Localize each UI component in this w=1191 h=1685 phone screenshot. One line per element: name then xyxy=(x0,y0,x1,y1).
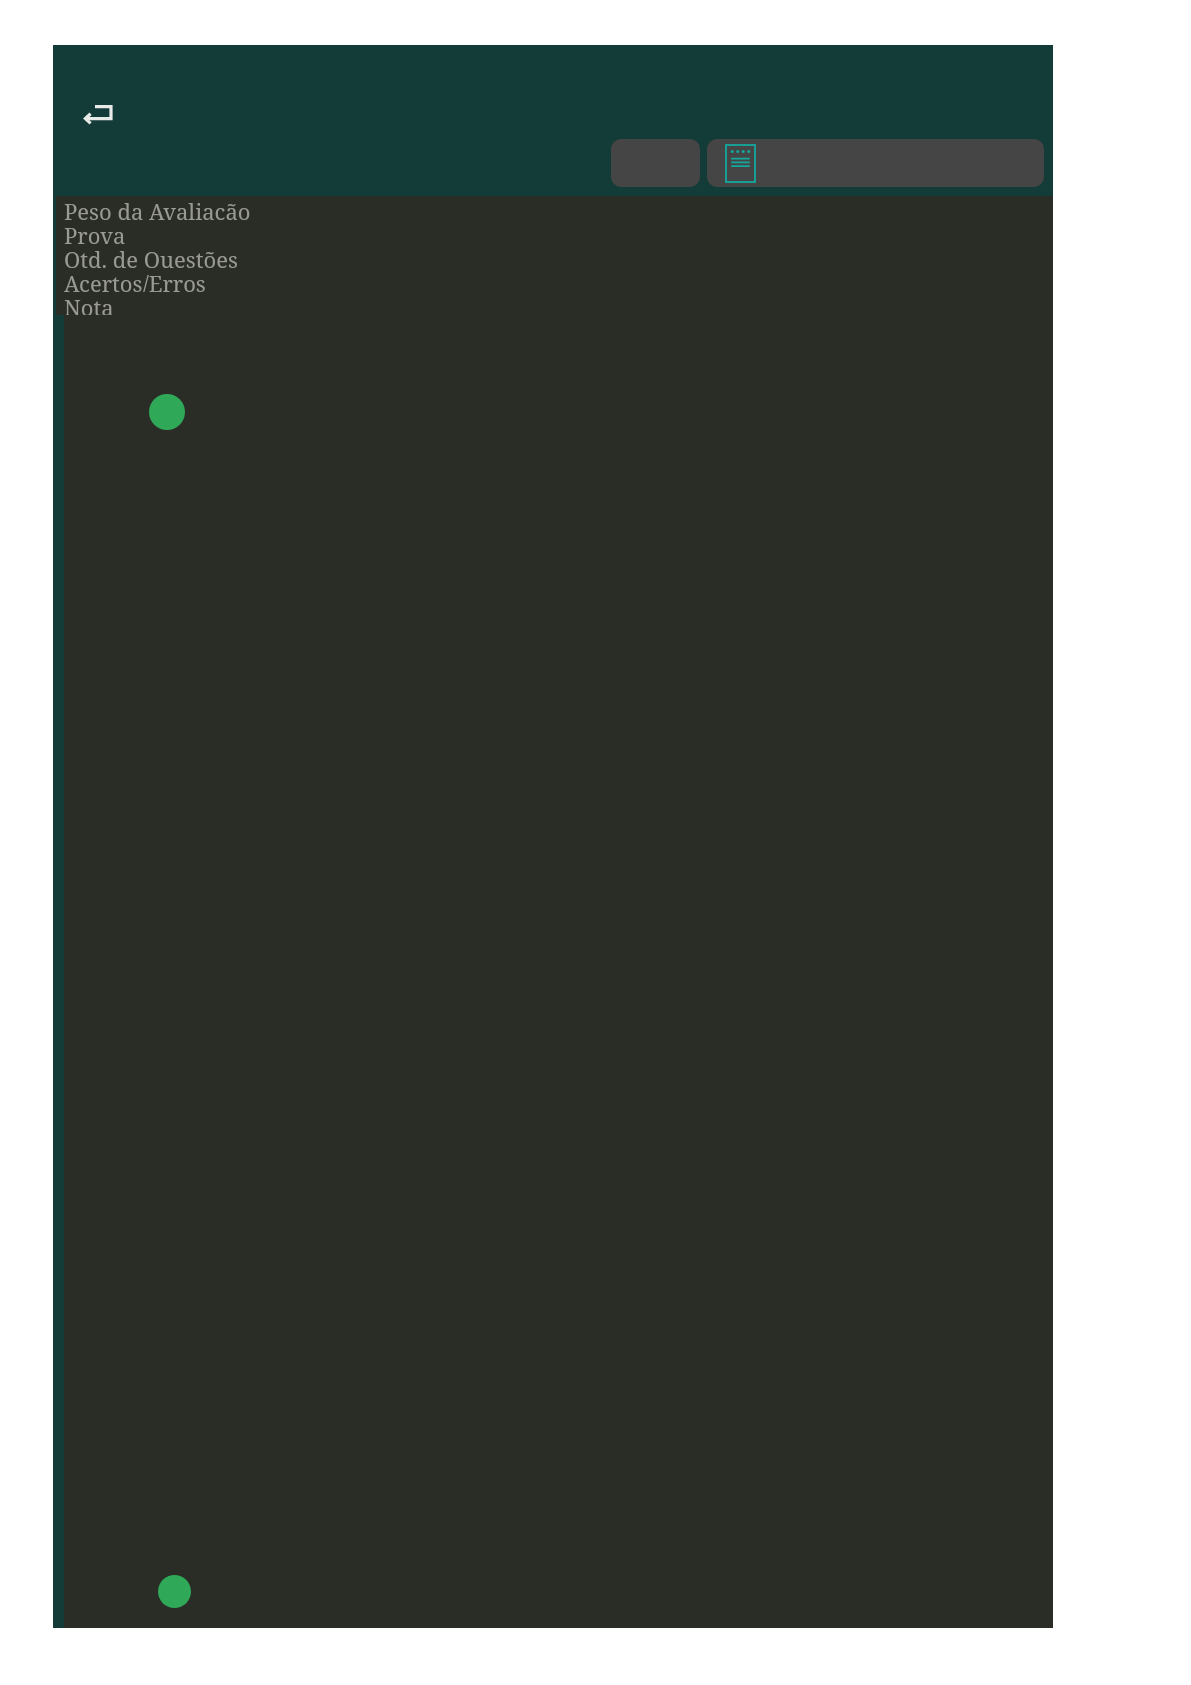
staticText: Nota xyxy=(64,292,114,315)
button[interactable]: Status indicator xyxy=(149,394,185,430)
staticText: Peso da Avaliação xyxy=(64,196,251,220)
button[interactable]: Status indicator xyxy=(158,1575,191,1608)
button[interactable]: Filter xyxy=(611,139,700,187)
button[interactable]: Back xyxy=(73,93,125,137)
staticText: Prova xyxy=(64,220,126,244)
button[interactable]: Notes xyxy=(707,139,1044,187)
staticText: Acertos/Erros xyxy=(64,268,206,292)
staticText: Qtd. de Questões xyxy=(64,244,238,268)
